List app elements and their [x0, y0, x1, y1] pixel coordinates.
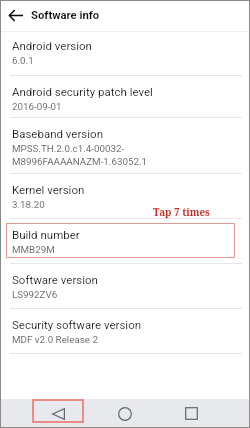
- staticText: 2016-09-01: [12, 101, 62, 112]
- staticText: Android version: [12, 39, 92, 52]
- staticText: Android security patch level: [12, 85, 153, 98]
- staticText: Build number: [12, 228, 80, 241]
- button[interactable]: Software version: [0, 264, 250, 308]
- button[interactable]: Build number: [0, 219, 250, 263]
- button[interactable]: Security software version: [0, 309, 250, 353]
- staticText: MDF v2.0 Release 2: [12, 334, 98, 345]
- button[interactable]: Android version: [0, 32, 250, 75]
- staticText: 6.0.1: [12, 55, 34, 66]
- button[interactable]: Back: [35, 399, 81, 428]
- staticText: Tap 7 times: [153, 205, 210, 218]
- staticText: Security software version: [12, 318, 142, 331]
- button[interactable]: Baseband version: [0, 118, 250, 173]
- button[interactable]: Back: [0, 0, 31, 31]
- staticText: Kernel version: [12, 183, 85, 196]
- button[interactable]: Android security patch level: [0, 76, 250, 117]
- button[interactable]: Kernel version: [0, 174, 250, 218]
- staticText: LS992ZV6: [12, 289, 58, 300]
- staticText: Software info: [31, 9, 100, 22]
- staticText: MMB29M: [12, 244, 55, 255]
- button[interactable]: Home: [102, 399, 148, 428]
- staticText: 3.18.20: [12, 199, 45, 210]
- button[interactable]: Recent apps: [168, 399, 214, 428]
- staticText: MPSS.TH.2.0.c1.4-00032- M8996FAAAANAZM-1…: [12, 143, 148, 168]
- staticText: Software version: [12, 273, 98, 286]
- staticText: Baseband version: [12, 127, 103, 140]
